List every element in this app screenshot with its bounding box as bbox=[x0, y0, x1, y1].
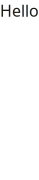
staticText: Hello bbox=[0, 0, 39, 21]
